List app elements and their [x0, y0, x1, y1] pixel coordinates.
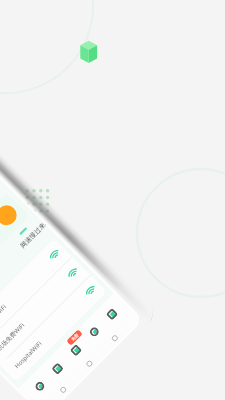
button[interactable]: Tab 1	[44, 356, 70, 381]
button[interactable]: Tab 4	[99, 301, 124, 327]
staticText: 机场免费WiFi	[0, 321, 26, 352]
button[interactable]	[0, 193, 30, 305]
button[interactable]: Tab 2	[62, 337, 88, 363]
button[interactable]: Nav 2	[108, 332, 121, 345]
button[interactable]: Nav 0	[57, 383, 70, 396]
button[interactable]: 城市免费WiFi	[0, 243, 67, 340]
button[interactable]: 机场免费WiFi	[0, 262, 85, 358]
button[interactable]: HospitalWiFi	[7, 280, 102, 375]
staticText: 网速慢过来看	[19, 221, 48, 250]
button[interactable]: Tab 0	[26, 374, 52, 399]
staticText: 免费	[70, 333, 79, 342]
staticText: 城市免费WiFi	[0, 303, 8, 334]
staticText: HospitalWiFi	[13, 339, 44, 370]
button[interactable]: Tab 3	[81, 319, 106, 345]
button[interactable]: Nav 1	[83, 357, 96, 370]
